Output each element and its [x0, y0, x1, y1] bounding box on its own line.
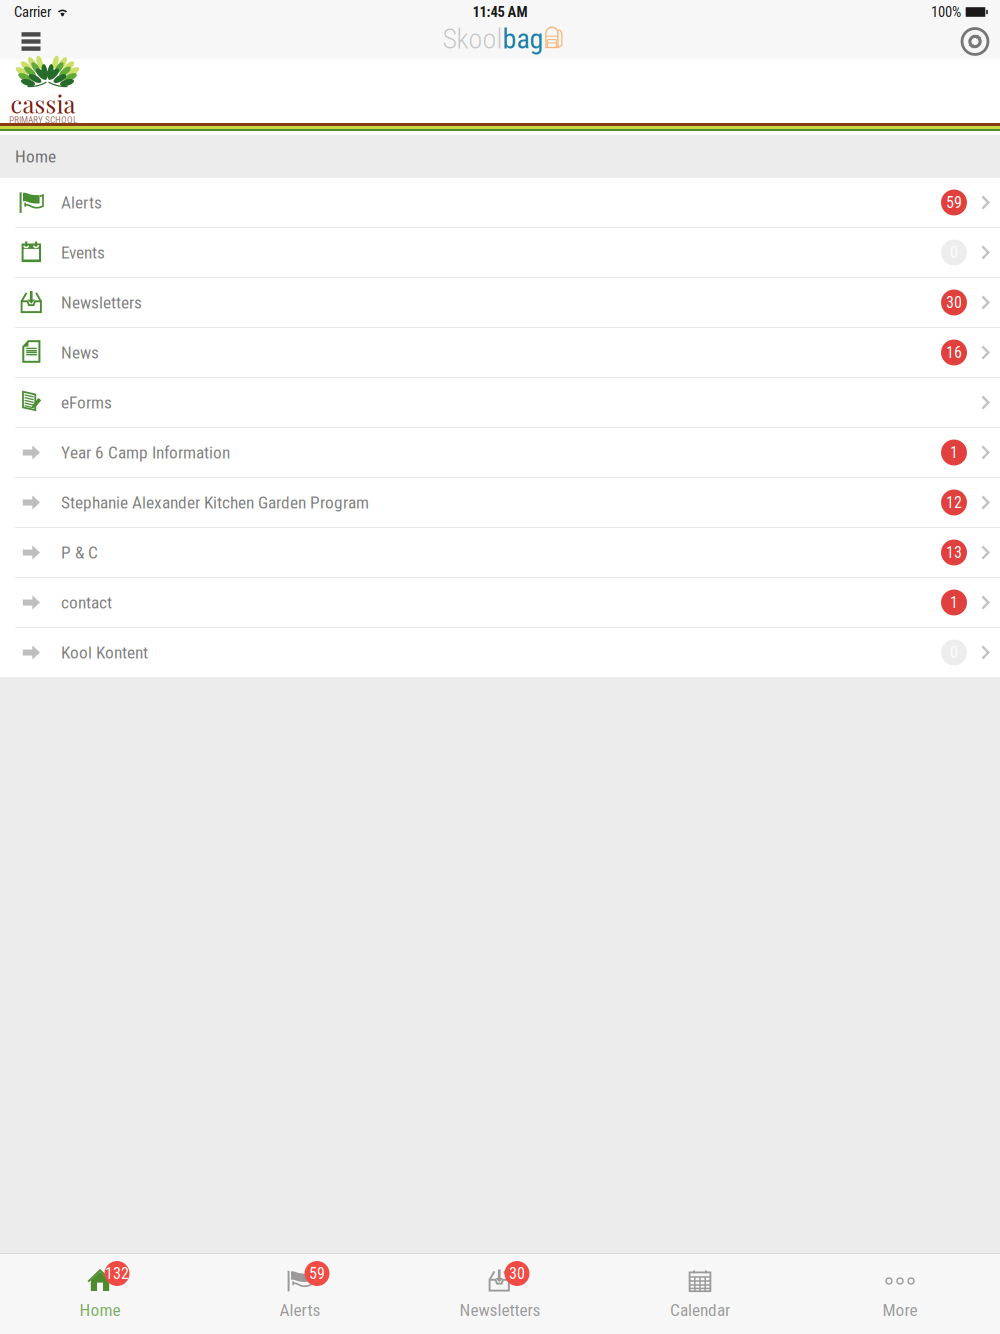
button[interactable]: Year 6 Camp Information	[0, 428, 1000, 477]
staticText: 30	[946, 293, 962, 312]
staticText: Carrier	[14, 3, 51, 21]
staticText: Home	[15, 146, 56, 167]
staticText: PRIMARY SCHOOL	[9, 114, 77, 125]
staticText: 30	[509, 1264, 525, 1283]
button[interactable]: Calendar	[600, 1253, 800, 1334]
button[interactable]: P & C	[0, 528, 1000, 577]
staticText: cassia	[10, 87, 75, 119]
staticText: 16	[946, 343, 962, 362]
staticText: Events	[61, 242, 105, 263]
staticText: Alerts	[61, 192, 102, 213]
staticText: 59	[309, 1264, 325, 1283]
staticText: 0	[950, 643, 958, 662]
button[interactable]: Menu	[14, 24, 48, 59]
staticText: Calendar	[670, 1300, 730, 1320]
staticText: Kool Kontent	[61, 642, 148, 663]
button[interactable]: Events	[0, 228, 1000, 277]
staticText: Alerts	[279, 1300, 320, 1320]
staticText: eForms	[61, 392, 112, 413]
button[interactable]: More	[800, 1253, 1000, 1334]
staticText: Stephanie Alexander Kitchen Garden Progr…	[61, 492, 369, 513]
button[interactable]: Stephanie Alexander Kitchen Garden Progr…	[0, 478, 1000, 527]
button[interactable]: Newsletters	[0, 278, 1000, 327]
staticText: Skool	[442, 23, 502, 55]
button[interactable]: 30	[400, 1253, 600, 1334]
button[interactable]: eForms	[0, 378, 1000, 427]
staticText: 1	[950, 593, 958, 612]
staticText: More	[882, 1300, 917, 1320]
button[interactable]: 59	[200, 1253, 400, 1334]
button[interactable]: Refresh	[962, 28, 988, 54]
button[interactable]: contact	[0, 578, 1000, 627]
staticText: News	[61, 342, 99, 363]
staticText: bag	[502, 23, 543, 55]
button[interactable]: Kool Kontent	[0, 628, 1000, 677]
staticText: Home	[79, 1300, 120, 1320]
button[interactable]: Alerts	[0, 178, 1000, 227]
staticText: 59	[946, 193, 962, 212]
button[interactable]: News	[0, 328, 1000, 377]
staticText: Newsletters	[61, 292, 142, 313]
staticText: contact	[61, 592, 112, 613]
staticText: Year 6 Camp Information	[61, 442, 230, 463]
staticText: 13	[946, 543, 962, 562]
staticText: 132	[105, 1264, 129, 1283]
staticText: 100%	[931, 3, 961, 21]
staticText: 12	[946, 493, 962, 512]
staticText: 1	[950, 443, 958, 462]
staticText: 0	[950, 243, 958, 262]
staticText: Newsletters	[459, 1300, 540, 1320]
button[interactable]: 132	[0, 1253, 200, 1334]
staticText: 11:45 AM	[472, 3, 527, 21]
staticText: P & C	[61, 542, 98, 563]
